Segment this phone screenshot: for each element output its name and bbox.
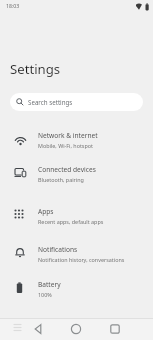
button[interactable]: Battery	[0, 271, 153, 306]
staticText: 100%	[38, 291, 52, 298]
staticText: Settings	[10, 60, 61, 78]
button[interactable]	[30, 321, 46, 337]
staticText: Battery	[38, 280, 61, 289]
staticText: Apps	[38, 207, 54, 216]
staticText: Notifications	[38, 245, 78, 254]
button[interactable]: Notifications	[0, 236, 153, 271]
staticText: 18:03	[6, 2, 20, 9]
staticText: Search settings	[28, 98, 73, 106]
button[interactable]	[107, 321, 123, 337]
button[interactable]: Network & internet	[0, 122, 153, 157]
button[interactable]: Apps	[0, 198, 153, 233]
staticText: Connected devices	[38, 165, 96, 174]
staticText: Notification history, conversations	[38, 256, 125, 263]
staticText: Bluetooth, pairing	[38, 176, 84, 183]
staticText: Mobile, Wi-Fi, hotspot	[38, 142, 93, 149]
button[interactable]: Search settings	[10, 93, 143, 111]
button[interactable]	[68, 321, 84, 337]
staticText: Network & internet	[38, 131, 98, 140]
staticText: Recent apps, default apps	[38, 218, 104, 225]
button[interactable]: Connected devices	[0, 156, 153, 191]
